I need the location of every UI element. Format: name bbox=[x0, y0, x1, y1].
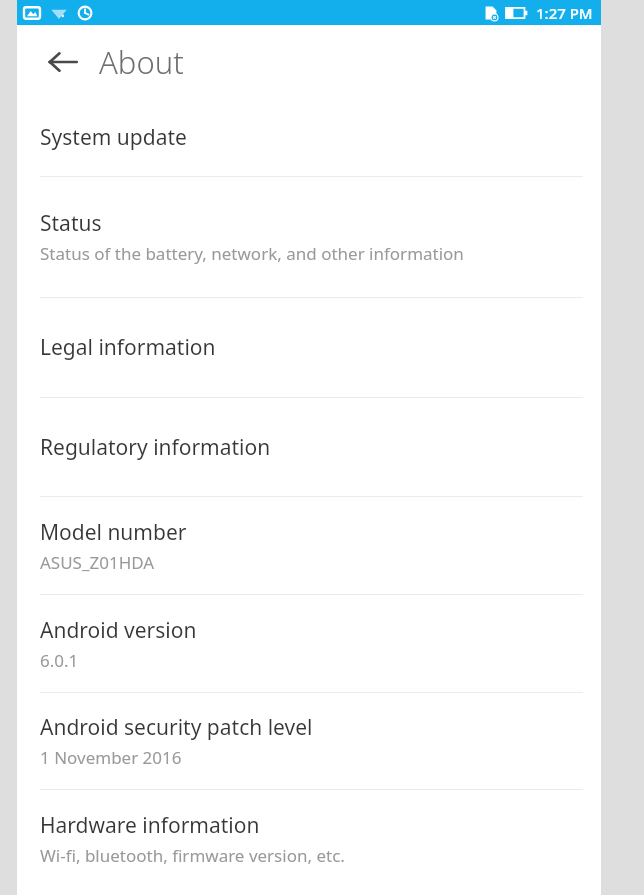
staticText: Android version bbox=[40, 616, 197, 645]
staticText: System update bbox=[40, 123, 187, 152]
button[interactable]: Model number bbox=[17, 497, 601, 594]
staticText: Status of the battery, network, and othe… bbox=[40, 242, 464, 265]
button[interactable]: Status bbox=[17, 177, 601, 297]
staticText: About bbox=[99, 41, 184, 83]
staticText: Android security patch level bbox=[40, 713, 313, 742]
button[interactable]: Android version bbox=[17, 595, 601, 692]
staticText: ASUS_Z01HDA bbox=[40, 551, 155, 574]
staticText: Model number bbox=[40, 518, 187, 547]
button[interactable]: System update bbox=[17, 98, 601, 176]
button[interactable]: Regulatory information bbox=[17, 398, 601, 496]
staticText: Status bbox=[40, 209, 102, 238]
staticText: Wi-fi, bluetooth, firmware version, etc. bbox=[40, 844, 345, 867]
staticText: 6.0.1 bbox=[40, 649, 79, 672]
staticText: Hardware information bbox=[40, 811, 260, 840]
staticText: Regulatory information bbox=[40, 433, 271, 462]
button[interactable]: Android security patch level bbox=[17, 693, 601, 789]
staticText: Legal information bbox=[40, 333, 216, 362]
staticText: 1:27 PM bbox=[536, 3, 593, 23]
button[interactable]: Navigate up bbox=[39, 38, 87, 86]
button[interactable]: Hardware information bbox=[17, 790, 601, 887]
staticText: 1 November 2016 bbox=[40, 746, 182, 769]
button[interactable]: Legal information bbox=[17, 298, 601, 397]
